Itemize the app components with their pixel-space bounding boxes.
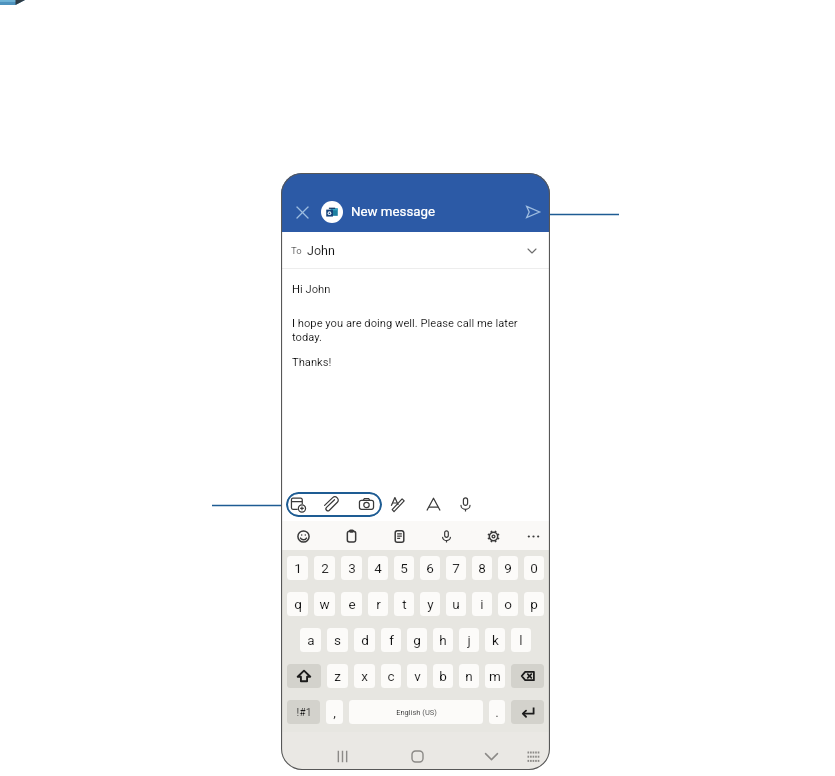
staticText: p	[530, 596, 538, 612]
button[interactable]: More options	[522, 525, 544, 547]
button[interactable]: Stickers	[388, 525, 410, 547]
button[interactable]: d	[354, 628, 375, 652]
staticText: .	[495, 704, 499, 720]
button[interactable]: p	[524, 592, 544, 616]
staticText: x	[361, 668, 368, 684]
button[interactable]: 8	[472, 556, 492, 580]
button[interactable]: Enter	[511, 700, 544, 724]
staticText: 5	[400, 560, 408, 576]
staticText: To	[291, 245, 302, 256]
button[interactable]: .	[489, 700, 505, 724]
button[interactable]: b	[433, 664, 453, 688]
staticText: g	[413, 632, 421, 648]
staticText: y	[427, 596, 434, 612]
button[interactable]: w	[314, 592, 335, 616]
button[interactable]: Expand recipients	[522, 241, 542, 261]
button[interactable]: g	[407, 628, 427, 652]
button[interactable]: h	[433, 628, 453, 652]
button[interactable]: Voice input	[454, 493, 476, 515]
staticText: 6	[426, 560, 434, 576]
button[interactable]: Keyboard settings	[482, 525, 504, 547]
button[interactable]: q	[287, 592, 308, 616]
staticText: m	[489, 668, 501, 684]
button[interactable]: 3	[341, 556, 362, 580]
staticText: u	[452, 596, 460, 612]
staticText: h	[439, 632, 447, 648]
button[interactable]: e	[341, 592, 362, 616]
button[interactable]: 2	[314, 556, 335, 580]
button[interactable]: Attach file	[320, 493, 342, 515]
staticText: New message	[351, 204, 436, 220]
staticText: k	[492, 632, 499, 648]
staticText: a	[307, 632, 315, 648]
button[interactable]: r	[368, 592, 388, 616]
button[interactable]: Close	[289, 199, 315, 225]
staticText: e	[348, 596, 356, 612]
button[interactable]: k	[485, 628, 505, 652]
button[interactable]: z	[327, 664, 348, 688]
staticText: Thanks!	[292, 356, 332, 369]
staticText: ,	[333, 704, 336, 720]
staticText: j	[467, 632, 471, 648]
button[interactable]: Recent apps	[329, 743, 355, 769]
staticText: n	[465, 668, 473, 684]
button[interactable]: Send	[519, 198, 547, 226]
button[interactable]: !#1	[287, 700, 320, 724]
button[interactable]: l	[511, 628, 531, 652]
button[interactable]: c	[381, 664, 401, 688]
button[interactable]: Text format	[422, 493, 444, 515]
staticText: 7	[452, 560, 460, 576]
button[interactable]: 9	[498, 556, 518, 580]
button[interactable]: English (US)	[349, 700, 483, 724]
staticText: v	[414, 668, 421, 684]
button[interactable]: ,	[326, 700, 343, 724]
button[interactable]: u	[446, 592, 466, 616]
button[interactable]: Shift	[287, 664, 321, 688]
button[interactable]: 5	[394, 556, 414, 580]
button[interactable]: Emoji	[292, 525, 314, 547]
button[interactable]: a	[300, 628, 321, 652]
button[interactable]: y	[420, 592, 440, 616]
staticText: 1	[294, 560, 302, 576]
button[interactable]: t	[394, 592, 414, 616]
button[interactable]: Keyboard layout	[520, 743, 546, 769]
button[interactable]: 1	[287, 556, 308, 580]
button[interactable]: f	[381, 628, 401, 652]
staticText: z	[334, 668, 341, 684]
button[interactable]: Home	[404, 743, 430, 769]
staticText: l	[519, 632, 523, 648]
staticText: q	[294, 596, 302, 612]
button[interactable]: 0	[524, 556, 544, 580]
staticText: b	[439, 668, 447, 684]
staticText: 3	[348, 560, 356, 576]
button[interactable]: Camera	[355, 493, 377, 515]
button[interactable]: s	[327, 628, 348, 652]
staticText: Hi John	[292, 283, 331, 296]
button[interactable]: j	[459, 628, 479, 652]
button[interactable]: n	[459, 664, 479, 688]
staticText: 2	[321, 560, 329, 576]
button[interactable]: Hide keyboard	[478, 743, 504, 769]
staticText: w	[319, 596, 330, 612]
button[interactable]: Add media	[287, 493, 309, 515]
button[interactable]: Draw	[387, 493, 409, 515]
staticText: John	[307, 243, 335, 258]
staticText: o	[504, 596, 512, 612]
button[interactable]: 7	[446, 556, 466, 580]
button[interactable]: Backspace	[511, 664, 544, 688]
button[interactable]: Clipboard	[340, 525, 362, 547]
button[interactable]: i	[472, 592, 492, 616]
staticText: 4	[374, 560, 382, 576]
staticText: English (US)	[396, 708, 437, 717]
button[interactable]: 6	[420, 556, 440, 580]
staticText: r	[376, 596, 381, 612]
staticText: f	[389, 632, 394, 648]
button[interactable]: Voice typing	[435, 525, 457, 547]
staticText: 9	[504, 560, 512, 576]
button[interactable]: o	[498, 592, 518, 616]
button[interactable]: v	[407, 664, 427, 688]
button[interactable]: x	[354, 664, 375, 688]
button[interactable]: 4	[368, 556, 388, 580]
staticText: !#1	[296, 706, 312, 718]
button[interactable]: m	[485, 664, 505, 688]
